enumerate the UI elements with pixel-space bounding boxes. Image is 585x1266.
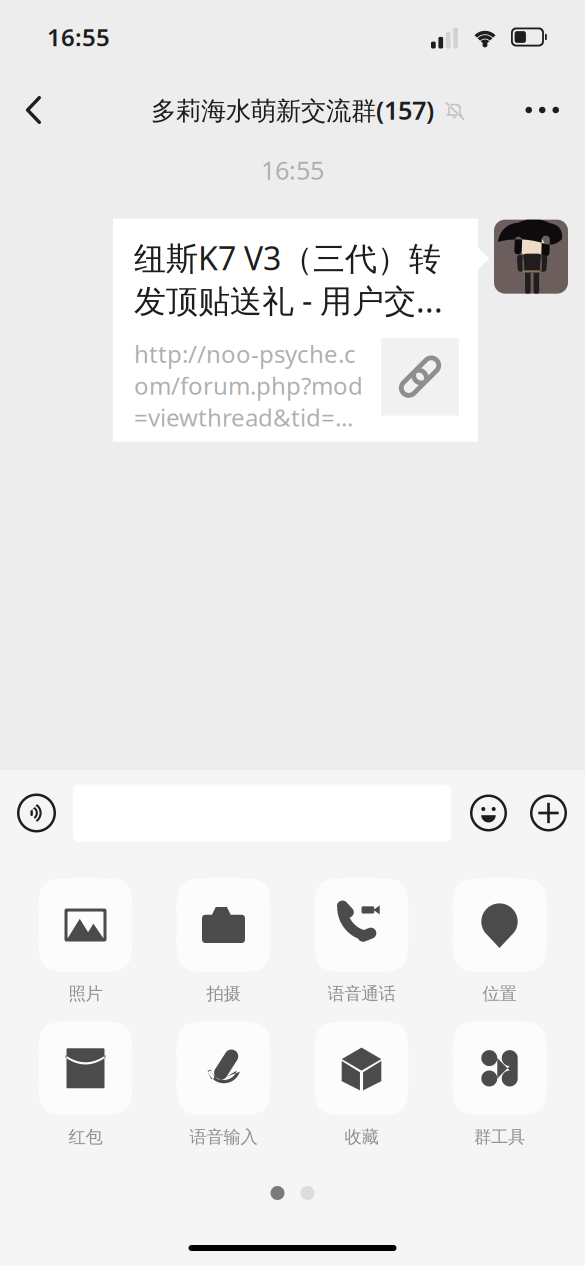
button[interactable]: Voice message [0, 770, 73, 856]
staticText: 群工具 [474, 1126, 525, 1148]
button[interactable]: More actions [519, 770, 585, 856]
staticText: 纽斯K7 V3（三代）转发顶贴送礼 - 用户交... [134, 237, 443, 322]
button[interactable]: Back [0, 74, 71, 146]
staticText: 16:55 [261, 153, 324, 187]
staticText: 收藏 [344, 1126, 378, 1148]
button[interactable]: 拍摄 [154, 878, 292, 1004]
staticText: 16:55 [47, 21, 110, 53]
staticText: 拍摄 [206, 983, 240, 1004]
button[interactable]: 语音输入 [154, 1021, 292, 1148]
button[interactable]: 纽斯K7 V3（三代）转发顶贴送礼 - 用户交... [113, 219, 478, 442]
button[interactable]: More [495, 74, 585, 146]
staticText: 照片 [68, 983, 102, 1004]
button[interactable]: 收藏 [292, 1021, 430, 1148]
button[interactable]: 位置 [430, 878, 568, 1004]
staticText: http://noo-psyche.c om/forum.php?mod =vi… [134, 338, 363, 433]
button[interactable]: 红包 [16, 1021, 154, 1148]
staticText: 语音通话 [327, 983, 395, 1004]
staticText: 多莉海水萌新交流群(157) [151, 93, 434, 127]
button[interactable]: 照片 [16, 878, 154, 1004]
button[interactable]: Emoji [451, 770, 519, 856]
button[interactable]: 语音通话 [292, 878, 430, 1004]
staticText: 红包 [68, 1126, 102, 1148]
staticText: 位置 [482, 983, 516, 1004]
button[interactable]: 群工具 [430, 1021, 568, 1148]
staticText: 语音输入 [189, 1126, 257, 1148]
button[interactable]: Contact avatar [494, 219, 568, 293]
